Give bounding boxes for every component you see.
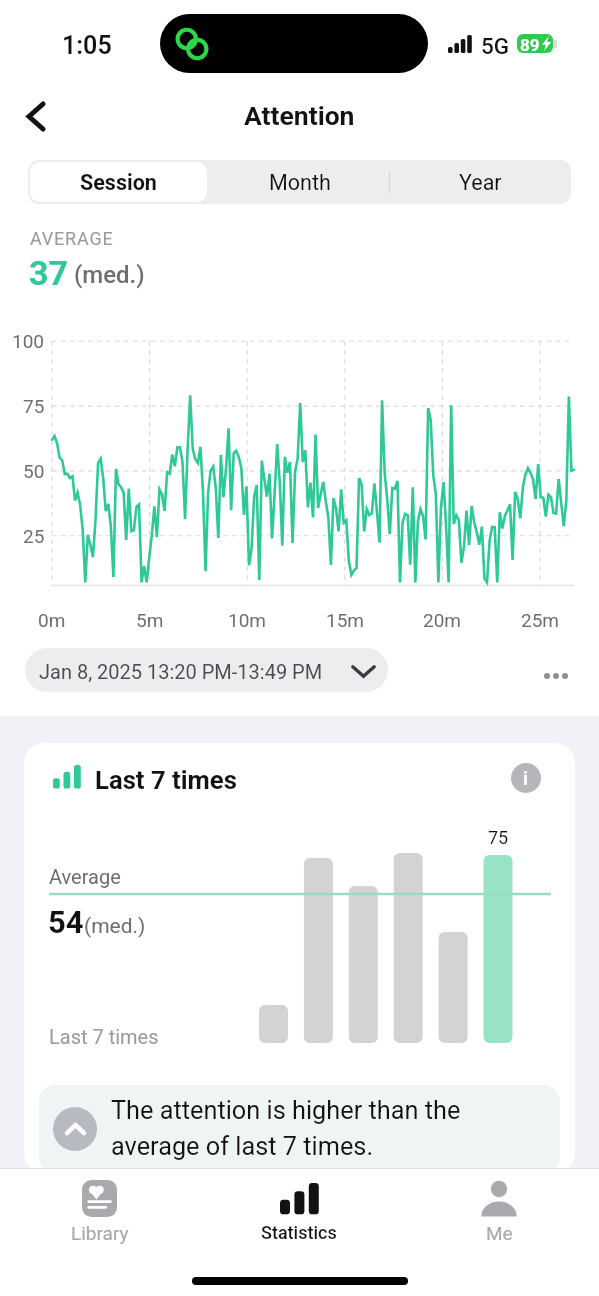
staticText: Month xyxy=(269,170,331,195)
button[interactable]: Jan 8, 2025 13:20 PM-13:49 PM xyxy=(25,648,388,692)
staticText: 50 xyxy=(23,460,45,482)
staticText: 5m xyxy=(136,609,164,631)
staticText: 54 xyxy=(48,904,84,940)
staticText: The attention is higher than the xyxy=(111,1096,461,1126)
staticText: Jan 8, 2025 13:20 PM-13:49 PM xyxy=(39,660,323,683)
button[interactable]: Back xyxy=(12,92,60,140)
staticText: Me xyxy=(486,1222,513,1244)
staticText: 100 xyxy=(12,330,45,352)
staticText: Last 7 times xyxy=(95,765,237,795)
staticText: 0m xyxy=(38,609,66,631)
button[interactable]: The attention is higher than the xyxy=(39,1085,560,1173)
button[interactable]: Library xyxy=(0,1169,199,1251)
staticText: 75 xyxy=(488,827,509,848)
button[interactable]: Info xyxy=(506,758,546,798)
staticText: Average xyxy=(49,865,121,888)
staticText: (med.) xyxy=(74,261,145,289)
button[interactable]: More options xyxy=(534,654,578,698)
staticText: 5G xyxy=(481,33,510,59)
staticText: 37 xyxy=(29,253,69,293)
staticText: 1:05 xyxy=(62,31,112,60)
staticText: Session xyxy=(80,170,157,195)
staticText: i xyxy=(523,767,529,789)
staticText: Year xyxy=(459,170,502,195)
staticText: 25m xyxy=(521,609,560,631)
staticText: 75 xyxy=(23,395,45,417)
staticText: 15m xyxy=(326,609,365,631)
button[interactable]: Session xyxy=(30,162,207,202)
staticText: 20m xyxy=(423,609,462,631)
staticText: 89 xyxy=(520,35,540,55)
button[interactable]: Month xyxy=(209,160,390,204)
staticText: Statistics xyxy=(261,1222,337,1243)
button[interactable]: Year xyxy=(390,160,571,204)
staticText: Library xyxy=(71,1222,129,1244)
button[interactable]: Statistics xyxy=(199,1169,399,1251)
staticText: average of last 7 times. xyxy=(111,1132,374,1162)
staticText: Attention xyxy=(244,100,355,131)
staticText: 10m xyxy=(228,609,267,631)
staticText: (med.) xyxy=(84,914,146,939)
button[interactable] xyxy=(28,160,209,204)
staticText: Last 7 times xyxy=(49,1025,159,1048)
button[interactable]: Me xyxy=(399,1169,599,1251)
staticText: 25 xyxy=(23,525,45,547)
staticText: AVERAGE xyxy=(30,228,114,249)
